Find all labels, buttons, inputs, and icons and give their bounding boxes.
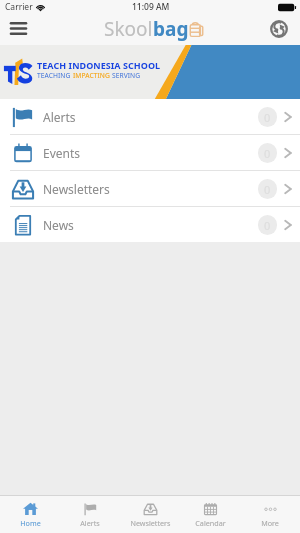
staticText: Newsletters xyxy=(130,518,171,528)
staticText: IMPACTING xyxy=(73,71,112,80)
staticText: TEACHING xyxy=(37,71,73,80)
button[interactable]: More xyxy=(240,496,300,533)
staticText: TEACH INDONESIA SCHOOL xyxy=(37,59,161,71)
staticText: Skool xyxy=(104,16,153,42)
staticText: Events xyxy=(43,145,81,161)
button[interactable]: Newsletters xyxy=(120,496,180,533)
staticText: Alerts xyxy=(43,109,76,125)
staticText: News xyxy=(43,217,74,233)
button[interactable]: Calendar xyxy=(180,496,240,533)
staticText: 0 xyxy=(264,218,271,233)
staticText: Alerts xyxy=(80,518,100,528)
staticText: 0 xyxy=(264,146,271,161)
button[interactable]: Alerts xyxy=(0,99,300,134)
button[interactable]: Events xyxy=(0,135,300,170)
button[interactable]: Home xyxy=(0,496,60,533)
button[interactable]: Newsletters xyxy=(0,171,300,206)
button[interactable]: Refresh xyxy=(267,17,291,41)
staticText: Calendar xyxy=(195,518,226,528)
staticText: Newsletters xyxy=(43,181,110,197)
button[interactable]: Alerts xyxy=(60,496,120,533)
staticText: bag xyxy=(153,16,189,42)
staticText: 0 xyxy=(264,182,271,197)
staticText: 11:09 AM xyxy=(132,1,170,13)
staticText: More xyxy=(261,518,279,528)
staticText: Carrier xyxy=(5,1,33,13)
staticText: Home xyxy=(20,518,41,528)
button[interactable]: News xyxy=(0,207,300,242)
staticText: SERVING xyxy=(112,71,141,80)
staticText: 0 xyxy=(264,110,271,125)
button[interactable]: Menu xyxy=(4,14,32,42)
